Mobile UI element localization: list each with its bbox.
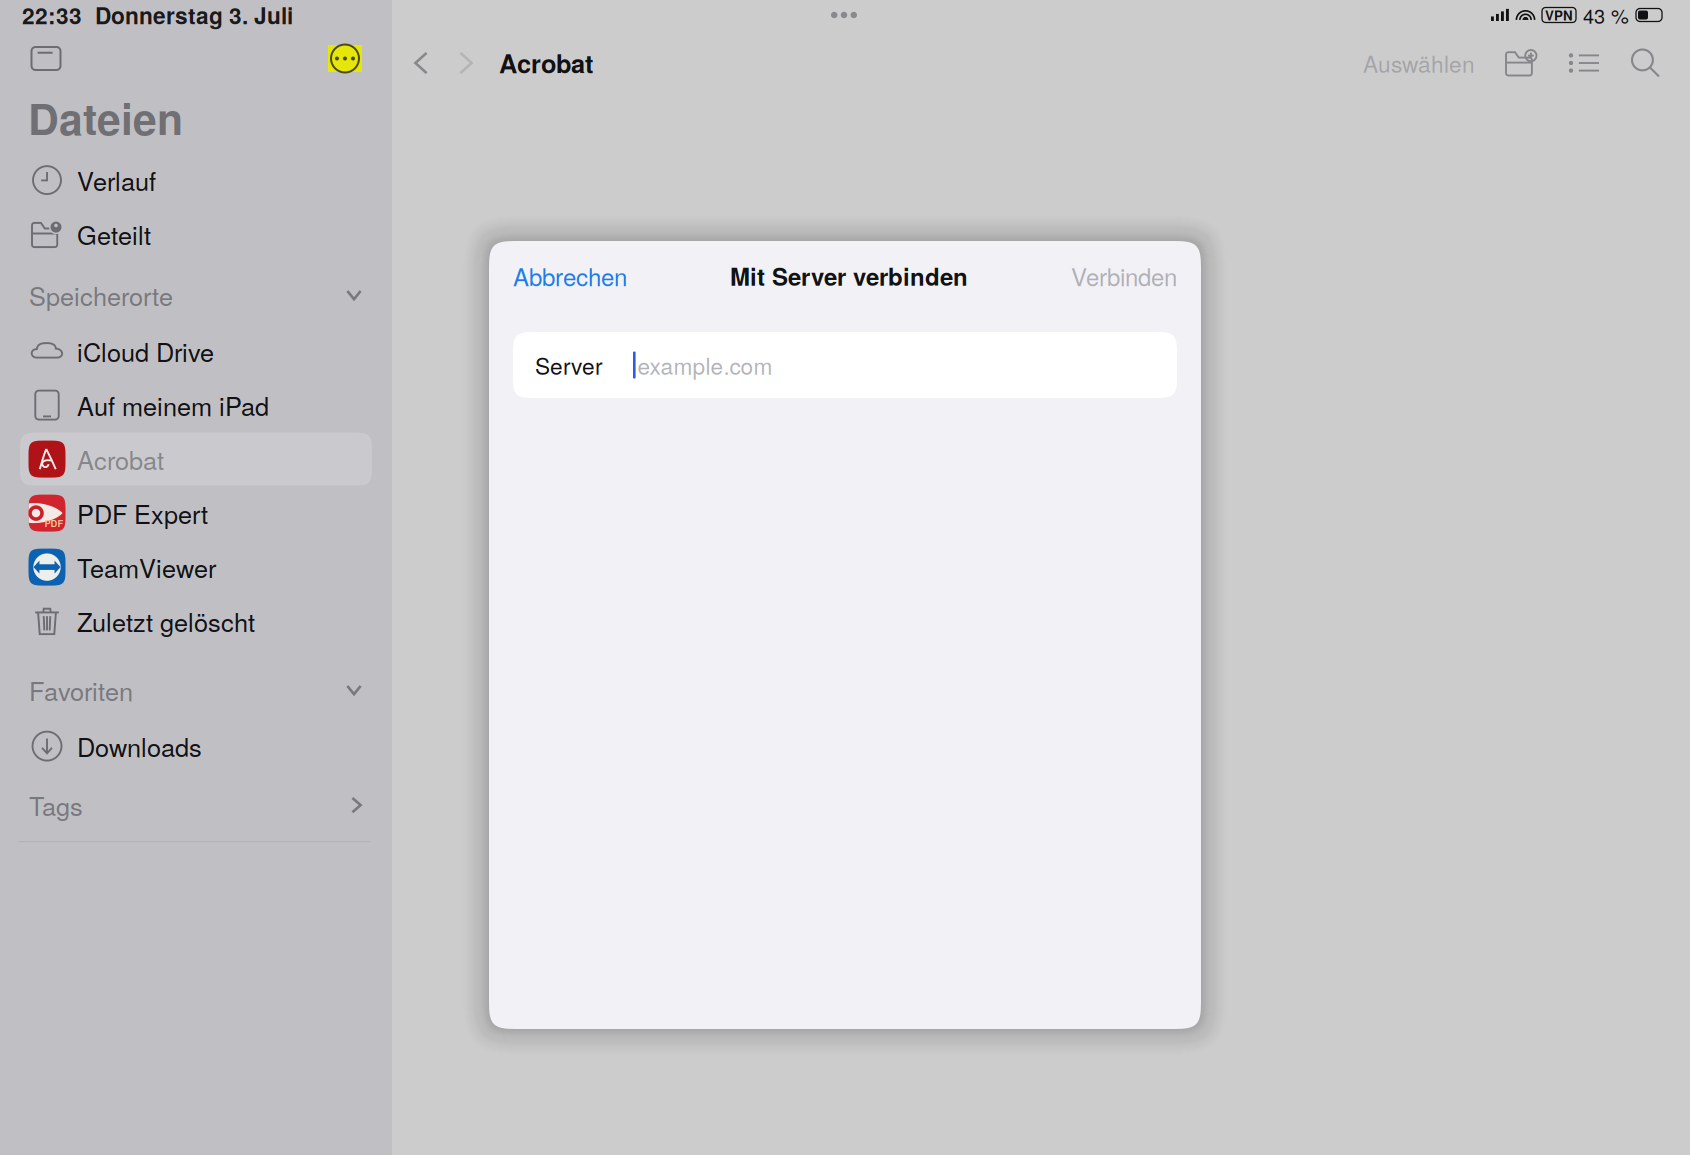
staticText: Donnerstag 3. Juli [95,0,293,31]
staticText: Tags [29,787,83,823]
staticText: 22:33 [22,0,82,31]
staticText: example.com [638,349,773,381]
staticText: Zuletzt gelöscht [77,603,255,639]
staticText: PDF [44,516,63,530]
button[interactable]: Neuer Ordner [1483,40,1547,85]
button[interactable]: Speicherorte [0,273,392,317]
button[interactable]: Tags [0,783,392,827]
staticText: Auswählen [1363,47,1475,79]
button[interactable]: Suchen [1611,40,1664,85]
button[interactable]: Zurück [401,41,441,84]
staticText: Abbrechen [513,259,627,293]
button[interactable]: Verlauf [0,154,392,207]
button[interactable]: Multitasking-Steuerung [392,2,867,28]
button[interactable]: Downloads [0,720,392,773]
button[interactable]: Darstellung [1547,41,1611,85]
staticText: Geteilt [77,216,151,252]
button[interactable]: iCloud Drive [0,325,392,378]
button[interactable]: Mehr [328,45,362,72]
button[interactable]: Abbrechen [505,251,635,301]
staticText: 43 % [1583,1,1629,29]
staticText: Speicherorte [29,277,173,313]
staticText: Acrobat [77,441,164,477]
button[interactable]: TeamViewer [0,541,392,594]
staticText: PDF Expert [77,495,208,531]
button[interactable]: PDF [0,487,392,540]
staticText: Verlauf [77,162,156,198]
button[interactable]: Seitenleiste ein-/ausblenden [23,38,69,78]
button[interactable]: Auf meinem iPad [0,379,392,432]
button[interactable]: Acrobat [0,433,392,486]
staticText: VPN [1545,5,1573,25]
staticText: Downloads [77,728,202,764]
staticText: Verbinden [1071,259,1177,293]
button[interactable]: Zuletzt gelöscht [0,595,392,648]
staticText: Acrobat [499,45,593,81]
button[interactable]: Geteilt [0,208,392,261]
staticText: Dateien [28,87,183,148]
button[interactable]: Vorwärts [441,41,486,84]
button[interactable]: Favoriten [0,668,392,712]
staticText: Favoriten [29,672,133,708]
button[interactable]: Verbinden [1063,251,1185,301]
staticText: iCloud Drive [77,333,214,369]
staticText: Auf meinem iPad [77,387,269,423]
staticText: Mit Server verbinden [730,259,968,293]
staticText: Server [535,349,603,381]
staticText: TeamViewer [77,549,216,585]
button[interactable]: Auswählen [1355,39,1483,87]
